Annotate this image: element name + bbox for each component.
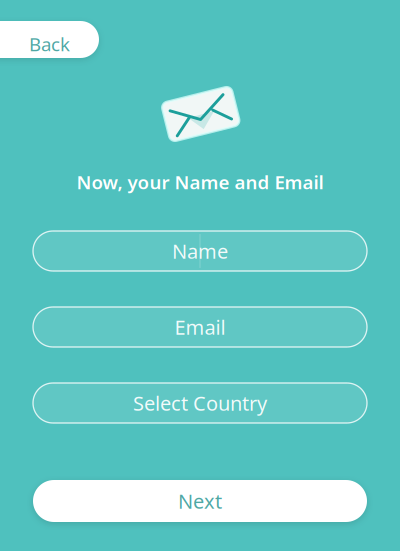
staticText: Now, your Name and Email xyxy=(76,170,323,194)
button[interactable]: Back xyxy=(0,21,99,58)
button[interactable]: Next xyxy=(33,480,367,522)
staticText: Email xyxy=(174,314,225,340)
button[interactable]: Select Country xyxy=(33,383,367,423)
staticText: Name xyxy=(172,238,228,264)
staticText: Next xyxy=(178,488,222,514)
staticText: Select Country xyxy=(133,390,267,416)
staticText: Back xyxy=(29,32,70,56)
button[interactable]: Name xyxy=(33,231,367,271)
button[interactable]: Email xyxy=(33,307,367,347)
